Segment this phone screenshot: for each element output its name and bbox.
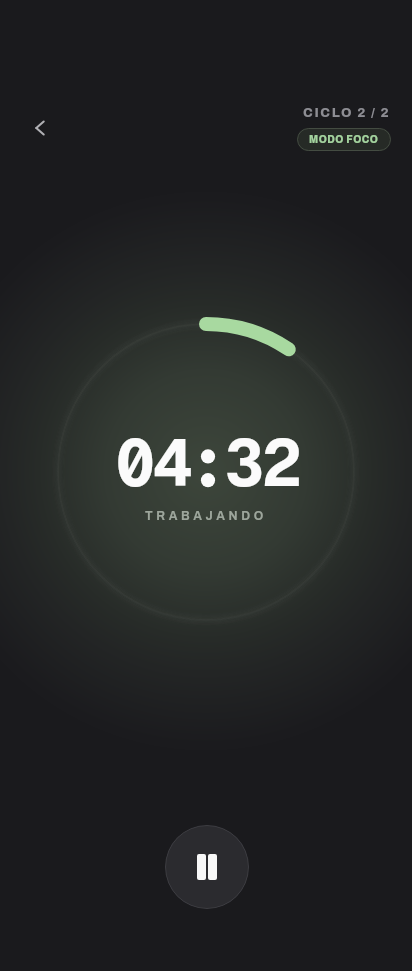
staticText: 04 (115, 420, 191, 506)
button[interactable]: Back (18, 106, 62, 150)
button[interactable]: MODO FOCO (297, 128, 391, 151)
button[interactable]: Pause (165, 825, 249, 909)
staticText: MODO FOCO (309, 134, 379, 145)
staticText: TRABAJANDO (145, 509, 267, 522)
staticText: 32 (224, 420, 300, 506)
staticText: CICLO 2 / 2 (303, 106, 391, 120)
